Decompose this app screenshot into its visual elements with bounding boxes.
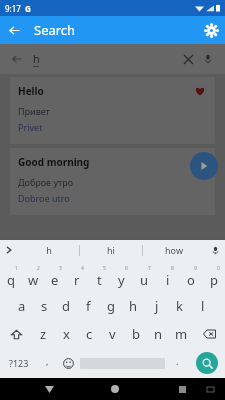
- button[interactable]: how: [143, 240, 205, 260]
- button[interactable]: Favorite: [193, 155, 207, 169]
- button[interactable]: ?123: [0, 348, 38, 378]
- staticText: x: [63, 325, 70, 343]
- button[interactable]: .: [165, 348, 189, 378]
- button[interactable]: k: [168, 292, 191, 320]
- staticText: k: [176, 297, 183, 315]
- staticText: h: [129, 297, 138, 315]
- staticText: 2: [37, 265, 40, 272]
- staticText: z: [40, 325, 47, 343]
- staticText: Privet: [18, 121, 43, 133]
- staticText: r: [74, 271, 80, 289]
- button[interactable]: Expand suggestions: [0, 240, 18, 260]
- button[interactable]: 1: [0, 264, 22, 292]
- button[interactable]: Hello: [10, 77, 215, 144]
- button[interactable]: v: [101, 320, 124, 348]
- button[interactable]: ,: [38, 348, 56, 378]
- staticText: 0: [217, 265, 220, 272]
- button[interactable]: hi: [80, 240, 142, 260]
- staticText: h: [46, 244, 52, 256]
- staticText: 3: [59, 265, 62, 272]
- button[interactable]: Recents: [171, 378, 193, 400]
- button[interactable]: g: [99, 292, 122, 320]
- button[interactable]: 5: [88, 264, 110, 292]
- staticText: ,: [46, 355, 49, 367]
- button[interactable]: 3: [44, 264, 66, 292]
- staticText: l: [201, 297, 205, 315]
- button[interactable]: s: [33, 292, 55, 320]
- button[interactable]: Back: [7, 49, 27, 69]
- staticText: u: [140, 271, 149, 289]
- staticText: 8: [171, 265, 174, 272]
- staticText: t: [97, 271, 102, 289]
- staticText: m: [175, 325, 188, 343]
- staticText: c: [86, 325, 93, 343]
- button[interactable]: j: [145, 292, 168, 320]
- button[interactable]: Hide keyboard: [38, 378, 60, 400]
- staticText: p: [210, 271, 218, 289]
- staticText: 4: [81, 265, 84, 272]
- staticText: e: [51, 271, 59, 289]
- button[interactable]: Search: [196, 352, 218, 374]
- staticText: q: [7, 271, 15, 289]
- button[interactable]: x: [55, 320, 78, 348]
- button[interactable]: b: [124, 320, 147, 348]
- button[interactable]: d: [55, 292, 77, 320]
- staticText: g: [107, 297, 115, 315]
- button[interactable]: Play pronunciation: [190, 152, 218, 180]
- button[interactable]: Clear: [178, 49, 198, 69]
- staticText: n: [154, 325, 163, 343]
- staticText: hi: [107, 244, 115, 256]
- button[interactable]: 4: [66, 264, 88, 292]
- button[interactable]: Favorite: [193, 84, 207, 98]
- staticText: d: [62, 297, 70, 315]
- button[interactable]: 0: [202, 264, 225, 292]
- button[interactable]: Shift: [0, 320, 32, 348]
- button[interactable]: 7: [133, 264, 156, 292]
- staticText: b: [132, 325, 140, 343]
- button[interactable]: Good morning: [10, 148, 215, 215]
- staticText: f: [86, 297, 91, 315]
- staticText: Search: [34, 21, 76, 39]
- staticText: how: [165, 244, 183, 256]
- button[interactable]: 6: [110, 264, 133, 292]
- button[interactable]: Settings: [197, 16, 225, 44]
- staticText: G: [25, 3, 31, 14]
- button[interactable]: 2: [22, 264, 44, 292]
- button[interactable]: a: [11, 292, 33, 320]
- button[interactable]: h: [18, 240, 79, 260]
- staticText: y: [118, 271, 125, 289]
- button[interactable]: Emoji: [56, 348, 80, 378]
- staticText: i: [166, 271, 170, 289]
- staticText: o: [187, 271, 195, 289]
- staticText: j: [155, 297, 159, 315]
- button[interactable]: f: [77, 292, 99, 320]
- button[interactable]: Voice search: [198, 49, 218, 69]
- button[interactable]: m: [170, 320, 193, 348]
- button[interactable]: n: [147, 320, 170, 348]
- staticText: w: [28, 271, 39, 289]
- button[interactable]: Home: [104, 378, 126, 400]
- button[interactable]: l: [191, 292, 214, 320]
- staticText: 5: [103, 265, 106, 272]
- button[interactable]: Backspace: [193, 320, 225, 348]
- staticText: ?123: [9, 357, 29, 369]
- staticText: 1: [15, 265, 18, 272]
- button[interactable]: h: [122, 292, 145, 320]
- staticText: 9:17: [5, 3, 21, 14]
- staticText: Good morning: [18, 155, 90, 169]
- staticText: Доброе утро: [18, 176, 73, 188]
- button[interactable]: Back: [0, 16, 28, 44]
- button[interactable]: z: [32, 320, 55, 348]
- button[interactable]: 8: [156, 264, 179, 292]
- staticText: 6: [125, 265, 128, 272]
- button[interactable]: c: [78, 320, 101, 348]
- button[interactable]: Switch keyboard: [201, 380, 219, 398]
- button[interactable]: 9: [179, 264, 202, 292]
- staticText: Dobroe utro: [18, 192, 70, 204]
- staticText: Привет: [18, 105, 50, 117]
- staticText: s: [41, 297, 48, 315]
- staticText: Hello: [18, 84, 44, 98]
- button[interactable]: Voice input: [205, 240, 225, 260]
- staticText: 7: [148, 265, 151, 272]
